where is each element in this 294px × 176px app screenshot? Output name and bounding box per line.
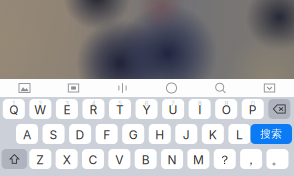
staticText: N	[168, 153, 177, 167]
button[interactable]: 8	[189, 99, 211, 119]
button[interactable]: 。	[266, 149, 288, 169]
staticText: R	[89, 103, 97, 117]
staticText: G	[129, 128, 138, 142]
button[interactable]: Z	[29, 149, 51, 169]
staticText: 6	[145, 99, 149, 107]
button[interactable]: X	[56, 149, 78, 169]
staticText: C	[88, 153, 97, 167]
staticText: Q	[9, 103, 18, 117]
button[interactable]: M	[187, 149, 209, 169]
button[interactable]: Keyboard tool 5	[196, 79, 245, 97]
staticText: Z	[36, 153, 44, 167]
button[interactable]: 9	[215, 99, 237, 119]
button[interactable]: A	[16, 124, 38, 144]
staticText: 搜索	[260, 127, 282, 141]
staticText: 5	[118, 99, 122, 107]
button[interactable]: J	[175, 124, 197, 144]
button[interactable]: Keyboard tool 4	[147, 79, 196, 97]
staticText: X	[63, 153, 71, 167]
staticText: 8	[198, 99, 202, 107]
button[interactable]: 6	[136, 99, 158, 119]
button[interactable]: 7	[162, 99, 184, 119]
staticText: ，	[245, 152, 257, 167]
staticText: B	[142, 153, 150, 167]
button[interactable]: D	[69, 124, 91, 144]
staticText: ？	[219, 152, 231, 167]
staticText: 9	[224, 99, 228, 107]
staticText: F	[103, 128, 110, 142]
staticText: L	[236, 128, 243, 142]
button[interactable]: N	[161, 149, 183, 169]
button[interactable]: Keyboard tool 3	[98, 79, 147, 97]
staticText: U	[169, 103, 178, 117]
button[interactable]: S	[42, 124, 64, 144]
staticText: O	[222, 103, 231, 117]
button[interactable]: 2	[29, 99, 51, 119]
staticText: A	[23, 128, 31, 142]
button[interactable]: 3	[56, 99, 78, 119]
button[interactable]: V	[108, 149, 130, 169]
staticText: P	[249, 103, 257, 117]
button[interactable]: ？	[214, 149, 236, 169]
staticText: M	[193, 153, 204, 167]
button[interactable]: H	[149, 124, 171, 144]
button[interactable]: 4	[82, 99, 104, 119]
button[interactable]: B	[135, 149, 157, 169]
button[interactable]: 搜索	[250, 124, 292, 144]
staticText: 3	[65, 99, 69, 107]
staticText: I	[198, 103, 201, 117]
staticText: Y	[143, 103, 151, 117]
staticText: V	[115, 153, 123, 167]
staticText: 4	[91, 99, 95, 107]
button[interactable]: F	[96, 124, 118, 144]
button[interactable]: 0	[242, 99, 264, 119]
staticText: H	[155, 128, 164, 142]
button[interactable]: Delete	[268, 99, 290, 119]
button[interactable]: Keyboard tool 1	[0, 79, 49, 97]
button[interactable]: 5	[109, 99, 131, 119]
staticText: 2	[38, 99, 42, 107]
staticText: 1	[12, 99, 15, 107]
button[interactable]: ，	[240, 149, 262, 169]
button[interactable]: G	[122, 124, 144, 144]
button[interactable]: Shift	[2, 149, 27, 169]
staticText: 。	[271, 152, 283, 167]
button[interactable]: Keyboard tool 2	[49, 79, 98, 97]
staticText: D	[76, 128, 85, 142]
button[interactable]: Keyboard tool 6	[245, 79, 294, 97]
staticText: S	[49, 128, 57, 142]
button[interactable]: 1	[3, 99, 25, 119]
staticText: E	[63, 103, 70, 117]
button[interactable]: K	[202, 124, 224, 144]
staticText: K	[209, 128, 217, 142]
staticText: J	[183, 128, 190, 142]
staticText: 0	[251, 99, 255, 107]
button[interactable]: L	[228, 124, 250, 144]
staticText: 7	[171, 99, 175, 107]
button[interactable]: C	[82, 149, 104, 169]
staticText: T	[116, 103, 124, 117]
staticText: W	[34, 103, 46, 117]
